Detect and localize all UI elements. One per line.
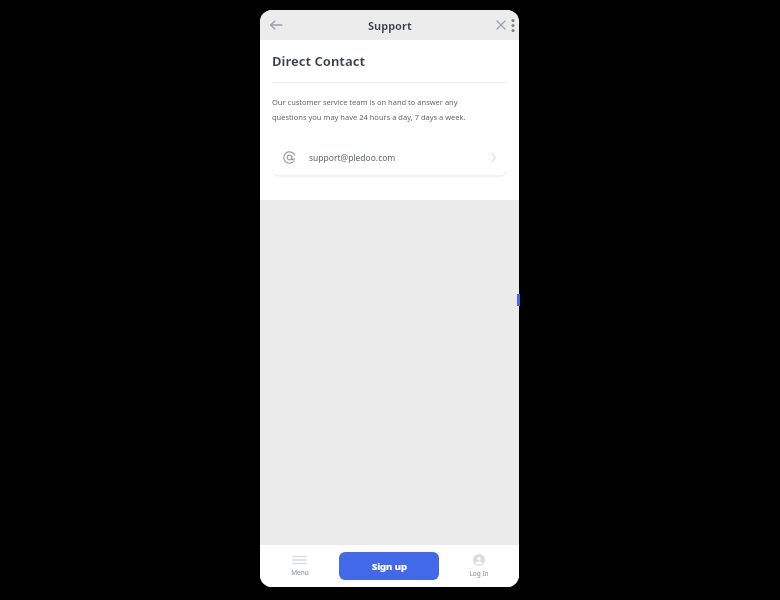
- button[interactable]: Close: [494, 18, 508, 32]
- staticText: Our customer service team is on hand to …: [272, 97, 487, 122]
- staticText: Menu: [291, 568, 309, 577]
- button[interactable]: support@pledoo.com: [272, 140, 507, 175]
- button[interactable]: Sign up: [339, 552, 439, 580]
- staticText: Sign up: [372, 560, 407, 573]
- staticText: Log In: [469, 569, 489, 578]
- staticText: Direct Contact: [272, 52, 366, 70]
- button[interactable]: Log In: [439, 545, 519, 587]
- staticText: Support: [368, 18, 412, 33]
- button[interactable]: Menu: [260, 545, 339, 587]
- button[interactable]: Back: [264, 13, 288, 37]
- staticText: support@pledoo.com: [309, 152, 396, 164]
- button[interactable]: More options: [508, 17, 518, 33]
